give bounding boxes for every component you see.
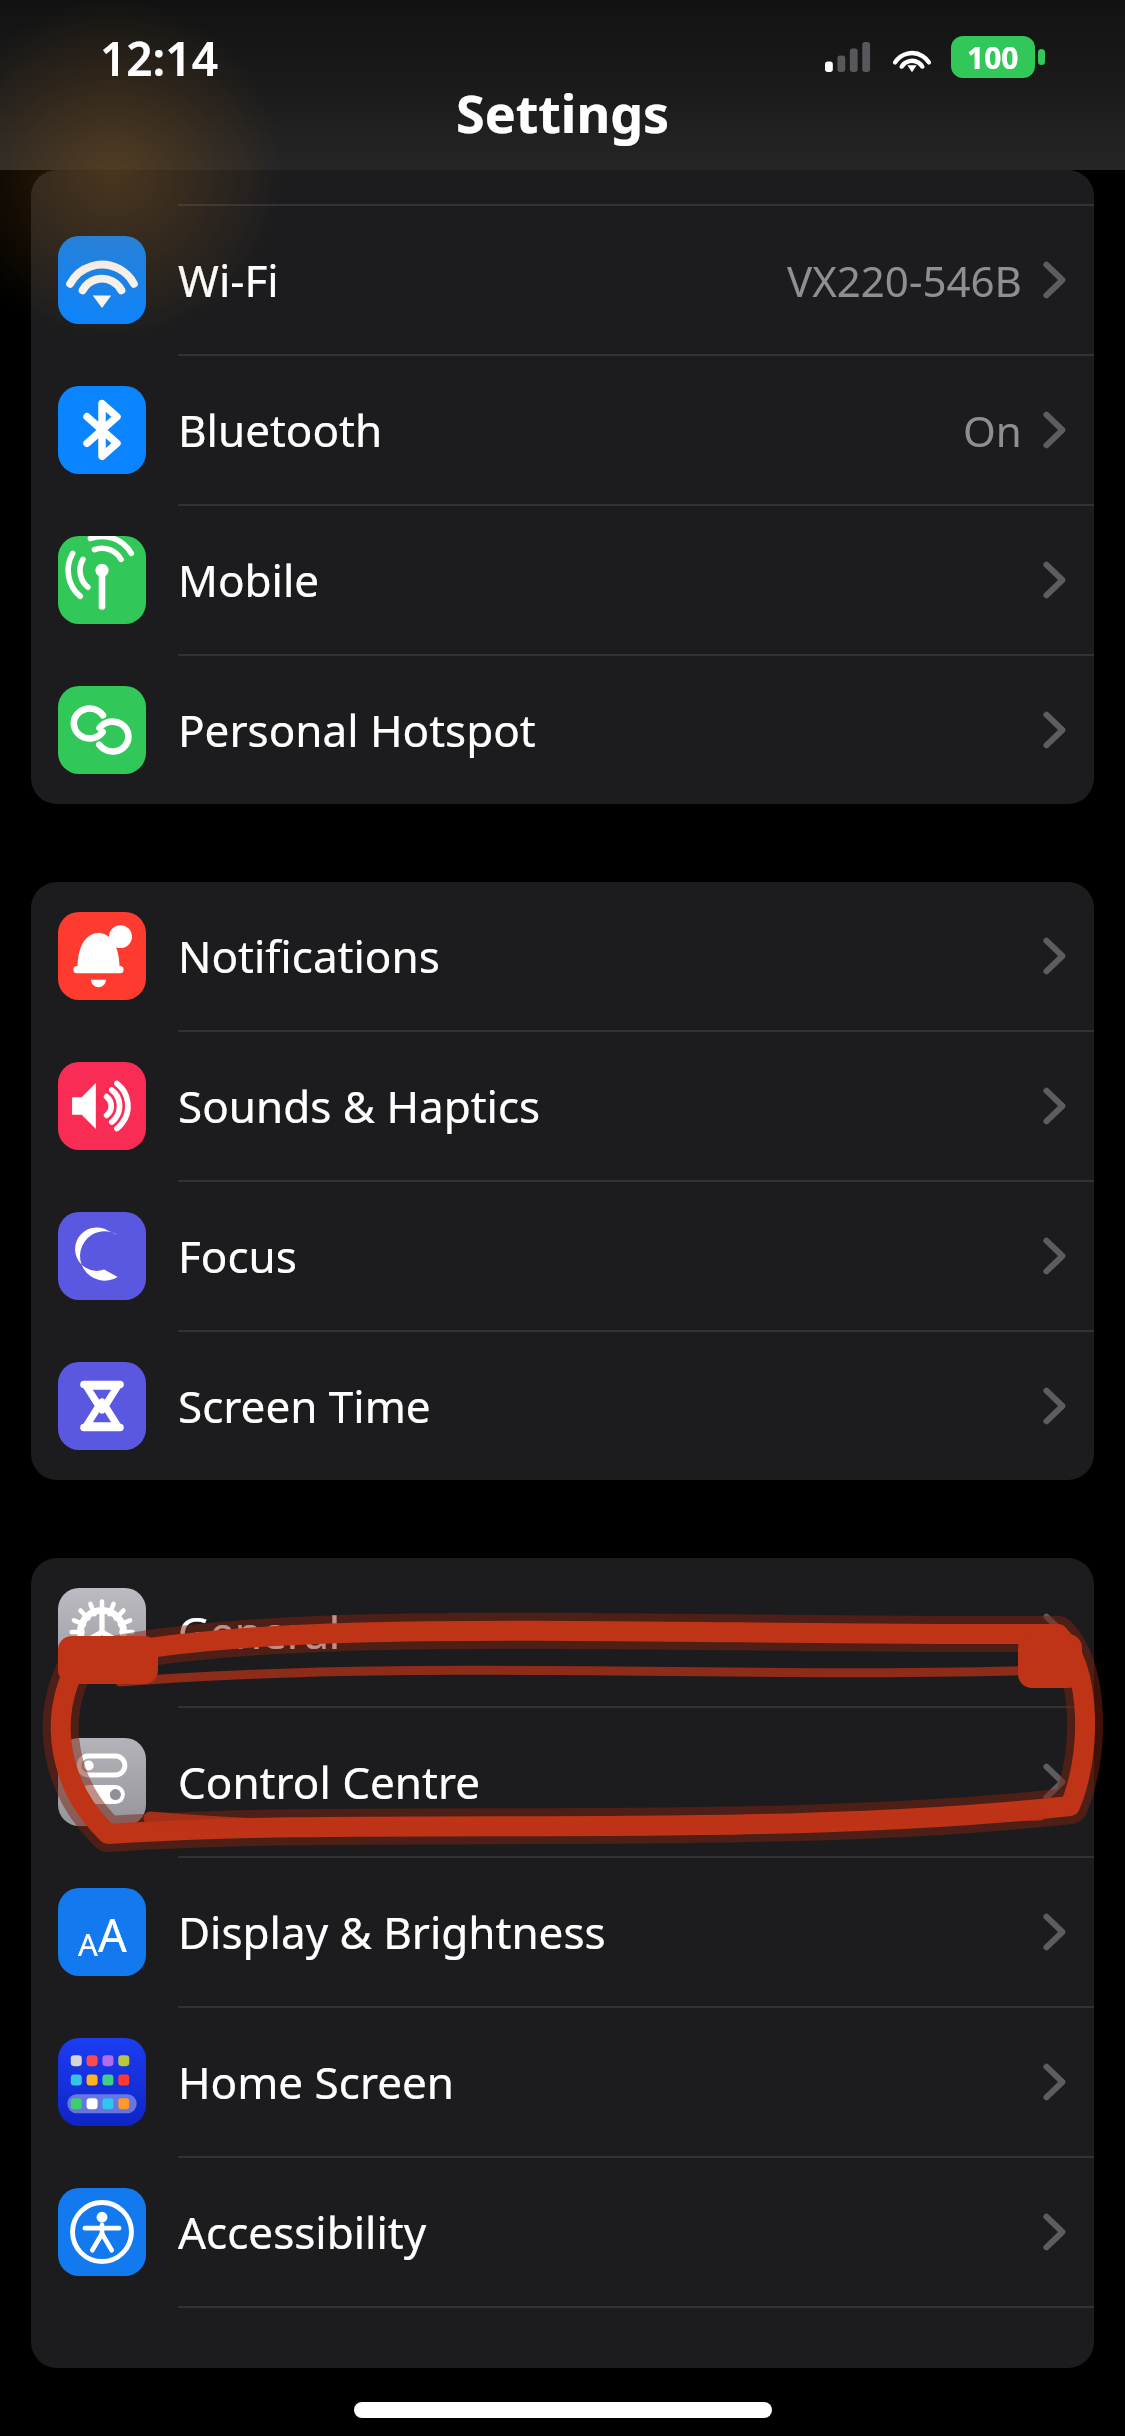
staticText: 100 — [967, 37, 1019, 78]
button[interactable]: Screen Time — [31, 1332, 1094, 1480]
button[interactable]: Mobile — [31, 506, 1094, 654]
staticText: Mobile — [178, 550, 320, 610]
staticText: Display & Brightness — [178, 1902, 606, 1962]
staticText: VX220-546B — [787, 252, 1022, 309]
staticText: Notifications — [178, 926, 440, 986]
staticText: A — [78, 1923, 98, 1965]
button[interactable]: Accessibility — [31, 2158, 1094, 2306]
staticText: Sounds & Haptics — [178, 1076, 541, 1136]
staticText: Settings — [456, 77, 670, 148]
staticText: Screen Time — [178, 1376, 431, 1436]
staticText: Home Screen — [178, 2052, 455, 2112]
staticText: Wi-Fi — [178, 250, 279, 310]
button[interactable]: Bluetooth — [31, 356, 1094, 504]
button[interactable]: Aeroplane Mode — [31, 170, 1094, 204]
button[interactable]: Notifications — [31, 882, 1094, 1030]
staticText: 12:14 — [100, 27, 218, 90]
button[interactable]: Wi-Fi — [31, 206, 1094, 354]
staticText: Personal Hotspot — [178, 700, 536, 760]
staticText: Control Centre — [178, 1752, 481, 1812]
button[interactable]: Personal Hotspot — [31, 656, 1094, 804]
staticText: Bluetooth — [178, 400, 383, 460]
staticText: General — [178, 1602, 341, 1662]
button[interactable]: Home Screen — [31, 2008, 1094, 2156]
button[interactable]: A — [31, 1858, 1094, 2006]
button[interactable]: Focus — [31, 1182, 1094, 1330]
staticText: Accessibility — [178, 2202, 427, 2262]
button[interactable]: Sounds & Haptics — [31, 1032, 1094, 1180]
staticText: A — [98, 1904, 127, 1965]
button[interactable]: Control Centre — [31, 1708, 1094, 1856]
staticText: On — [963, 402, 1022, 459]
staticText: Focus — [178, 1226, 297, 1286]
button[interactable]: General — [31, 1558, 1094, 1706]
